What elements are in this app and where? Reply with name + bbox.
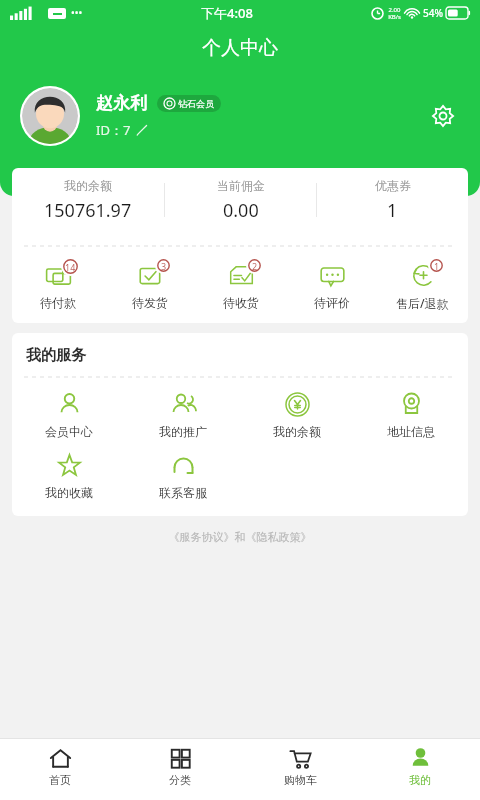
button[interactable]: 2 — [195, 259, 286, 310]
button[interactable]: 我的余额 — [12, 168, 164, 232]
button[interactable]: 我的推广 — [126, 392, 240, 439]
staticText: 2 — [252, 260, 258, 272]
staticText: 优惠券 — [375, 178, 411, 193]
button[interactable]: 待评价 — [286, 259, 377, 310]
staticText: 下午4:08 — [201, 4, 253, 22]
staticText: 当前佣金 — [217, 178, 265, 193]
staticText: 我的推广 — [159, 424, 207, 439]
button[interactable]: 我的 — [360, 739, 480, 795]
staticText: 1 — [387, 198, 398, 223]
button[interactable]: 会员中心 — [12, 392, 126, 439]
staticText: 购物车 — [284, 773, 317, 787]
staticText: 0.00 — [223, 198, 259, 223]
staticText: 售后/退款 — [396, 295, 449, 311]
staticText: 个人中心 — [0, 36, 480, 60]
button[interactable]: 14 — [12, 259, 104, 310]
staticText: 待收货 — [223, 295, 259, 310]
staticText: 《服务协议》和《隐私政策》 — [0, 530, 480, 544]
button[interactable]: 地址信息 — [354, 392, 468, 439]
staticText: 我的收藏 — [45, 485, 93, 500]
staticText: 待发货 — [132, 295, 168, 310]
button[interactable]: 首页 — [0, 739, 120, 795]
button[interactable]: 优惠券 — [317, 168, 468, 232]
staticText: 待付款 — [40, 295, 76, 310]
button[interactable]: 我的订单 — [12, 202, 468, 246]
staticText: 联系客服 — [159, 485, 207, 500]
button[interactable]: 分类 — [120, 739, 240, 795]
staticText: 我的余额 — [273, 424, 321, 439]
button[interactable]: 当前佣金 — [165, 168, 316, 232]
staticText: 赵永利 — [96, 93, 147, 114]
staticText: ID：7 — [96, 121, 131, 139]
staticText: 首页 — [49, 773, 71, 787]
staticText: 150761.97 — [44, 198, 132, 223]
staticText: 3 — [161, 260, 167, 272]
staticText: 我的订单 — [26, 215, 86, 234]
staticText: 待评价 — [314, 295, 350, 310]
staticText: 1 — [434, 260, 440, 272]
button[interactable]: 我的收藏 — [12, 453, 126, 500]
staticText: ••• — [71, 6, 83, 20]
button[interactable]: 钻石会员 — [157, 95, 221, 112]
staticText: 地址信息 — [387, 424, 435, 439]
staticText: 14 — [65, 261, 76, 273]
staticText: 我的服务 — [26, 346, 86, 365]
button[interactable]: Edit ID — [96, 121, 148, 139]
button[interactable]: Settings — [426, 99, 460, 133]
staticText: 会员中心 — [45, 424, 93, 439]
button[interactable]: 3 — [104, 259, 195, 310]
button[interactable]: 联系客服 — [126, 453, 240, 500]
button[interactable]: 购物车 — [240, 739, 360, 795]
button[interactable]: 我的余额 — [240, 392, 354, 439]
staticText: 钻石会员 — [178, 98, 214, 109]
button[interactable]: 1 — [377, 259, 468, 311]
staticText: 54% — [423, 6, 443, 20]
staticText: 我的 — [409, 773, 431, 787]
staticText: 我的余额 — [64, 178, 112, 193]
staticText: 分类 — [169, 773, 191, 787]
staticText: 2.00 KB/s — [388, 6, 401, 20]
